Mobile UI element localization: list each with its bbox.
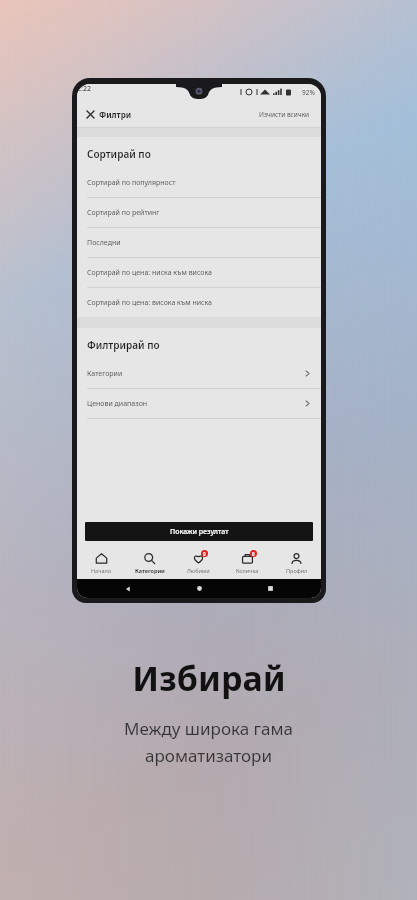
button[interactable]: Начало — [77, 546, 125, 579]
button[interactable]: Ценови диапазон — [77, 389, 321, 418]
staticText: Категории — [135, 567, 165, 574]
button[interactable]: Профил — [272, 546, 321, 579]
staticText: Категории — [87, 369, 123, 379]
staticText: Любими — [187, 567, 210, 574]
staticText: Изчисти всички — [259, 110, 310, 119]
other: Recents — [267, 585, 274, 592]
staticText: Филтри — [99, 109, 132, 120]
button[interactable]: Back — [108, 579, 148, 598]
staticText: Профил — [286, 567, 308, 574]
button[interactable]: Recents — [250, 579, 290, 598]
button[interactable]: Сортирай по цена: висока към ниска — [77, 288, 321, 317]
staticText: Сортирай по — [87, 147, 151, 161]
button[interactable]: Категории — [77, 359, 321, 388]
staticText: Начало — [91, 567, 111, 574]
other: Close filters — [86, 110, 95, 119]
button[interactable]: Категории — [125, 546, 174, 579]
staticText: Последни — [87, 238, 121, 248]
staticText: Между широка гама — [124, 717, 293, 740]
button[interactable]: Close filters — [86, 106, 132, 123]
staticText: 0 — [203, 551, 206, 557]
staticText: Сортирай по цена: ниска към висока — [87, 268, 212, 278]
button[interactable]: Сортирай по популярност — [77, 168, 321, 197]
other: Back — [124, 585, 132, 593]
staticText: 0 — [252, 551, 255, 557]
button[interactable]: 0 — [223, 546, 272, 579]
button[interactable]: Home — [179, 579, 219, 598]
staticText: Избирай — [132, 655, 286, 701]
staticText: 92% — [302, 88, 315, 97]
staticText: Сортирай по популярност — [87, 178, 176, 188]
staticText: Количка — [236, 567, 259, 574]
button[interactable]: Сортирай по рейтинг — [77, 198, 321, 227]
staticText: 2:22 — [77, 84, 91, 94]
staticText: Филтрирай по — [87, 338, 160, 352]
button[interactable]: Покажи резултат — [85, 522, 313, 541]
other: Home — [196, 585, 203, 592]
button[interactable]: Последни — [77, 228, 321, 257]
staticText: ароматизатори — [145, 744, 272, 767]
button[interactable]: 0 — [174, 546, 223, 579]
staticText: Ценови диапазон — [87, 399, 148, 409]
button[interactable]: Изчисти всички — [257, 106, 312, 123]
staticText: Покажи резултат — [170, 527, 229, 537]
staticText: Сортирай по рейтинг — [87, 208, 160, 218]
button[interactable]: Сортирай по цена: ниска към висока — [77, 258, 321, 287]
staticText: Сортирай по цена: висока към ниска — [87, 298, 212, 308]
